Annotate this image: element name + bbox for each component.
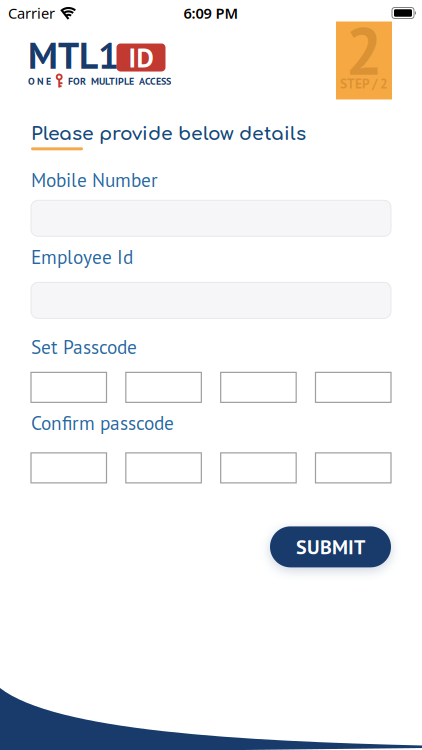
staticText: 6:09 PM xyxy=(183,3,238,23)
button[interactable]: Set Passcode digit 4 xyxy=(315,372,391,402)
staticText: O N E xyxy=(28,74,51,87)
staticText: Confirm passcode xyxy=(31,410,174,435)
button[interactable]: Confirm passcode digit 2 xyxy=(126,453,201,483)
button[interactable]: Confirm passcode digit 4 xyxy=(315,453,391,483)
staticText: Mobile Number xyxy=(31,167,158,192)
staticText: ID xyxy=(128,40,153,75)
staticText: FOR MULTIPLE ACCESS xyxy=(68,74,171,87)
staticText: Carrier xyxy=(8,3,55,23)
staticText: MTL1 xyxy=(28,31,119,79)
button[interactable]: SUBMIT xyxy=(270,526,391,567)
button[interactable]: Set Passcode digit 3 xyxy=(221,372,296,402)
staticText: SUBMIT xyxy=(296,534,365,560)
staticText: Employee Id xyxy=(31,244,133,269)
button[interactable]: Confirm passcode digit 3 xyxy=(221,453,296,483)
button[interactable]: Set Passcode digit 1 xyxy=(31,372,106,402)
button[interactable]: Set Passcode digit 2 xyxy=(126,372,201,402)
staticText: STEP / 2 xyxy=(340,75,388,92)
button[interactable]: Confirm passcode digit 1 xyxy=(31,453,106,483)
staticText: 2 xyxy=(345,7,382,92)
staticText: Please provide below details xyxy=(31,123,306,144)
staticText: Set Passcode xyxy=(31,334,137,359)
